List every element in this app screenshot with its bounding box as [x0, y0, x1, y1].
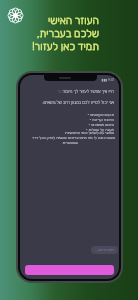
- staticText: ‫תמיד כאן לעזור!‬: [32, 40, 99, 53]
- staticText: ‫כתיבה ועריכה •‬: [89, 117, 114, 122]
- staticText: ‫אני יכול לסייע לכם במגוון רחב של נושאים…: [42, 100, 114, 105]
- staticText: ‫שאפשרית‬: [62, 140, 78, 145]
- staticText: ‫העוזר האישי‬: [47, 14, 99, 27]
- button[interactable]: App logo: [8, 8, 23, 23]
- staticText: ‫סיכום מסמכים •‬: [88, 122, 114, 127]
- staticText: ‫פשוט כתבו לי מה אתם צריכים ואשמח לסייע …: [31, 135, 115, 140]
- staticText: 10:24: [57, 90, 65, 94]
- staticText: ‫היי! איך אפשר לעזור לך היום?‬: [62, 89, 114, 94]
- staticText: ‫אפשר גם לשאול אותי בחופשיות‬: [65, 130, 114, 135]
- button[interactable]: ‫כתבו הודעה...‬: [95, 248, 114, 252]
- staticText: ‫מענה על שאלות •‬: [85, 127, 114, 132]
- button[interactable]: [25, 265, 114, 275]
- staticText: ‫תרגום טקסטים •‬: [87, 112, 114, 117]
- staticText: ‫9:41 ▮▮▮‬: [101, 78, 114, 82]
- staticText: ‫כתבו הודעה...‬: [95, 248, 114, 252]
- staticText: ‫שלכם בעברית,‬: [37, 27, 99, 40]
